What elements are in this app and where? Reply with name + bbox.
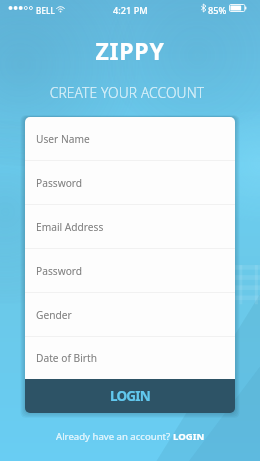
button[interactable]: Date of Birth <box>25 337 235 379</box>
button[interactable]: Email Address <box>25 205 235 249</box>
button[interactable]: User Name <box>25 117 235 161</box>
staticText: 85% <box>208 4 227 17</box>
staticText: Password <box>36 264 83 278</box>
staticText: LOGIN <box>173 430 205 443</box>
staticText: CREATE YOUR ACCOUNT <box>0 83 257 102</box>
staticText: 4:21 PM <box>113 4 148 17</box>
button[interactable]: LOGIN <box>25 379 235 413</box>
staticText: Already have an account? <box>56 430 173 443</box>
staticText: Date of Birth <box>36 351 97 365</box>
button[interactable]: Gender <box>25 293 235 337</box>
staticText: ZIPPY <box>0 35 260 66</box>
button[interactable]: Password <box>25 249 235 293</box>
staticText: User Name <box>36 132 90 146</box>
staticText: BELL <box>36 5 56 16</box>
staticText: Password <box>36 176 83 190</box>
staticText: Email Address <box>36 220 104 234</box>
button[interactable]: Already have an account? <box>56 430 205 443</box>
staticText: Gender <box>36 308 72 322</box>
staticText: LOGIN <box>110 387 150 405</box>
button[interactable]: Password <box>25 161 235 205</box>
